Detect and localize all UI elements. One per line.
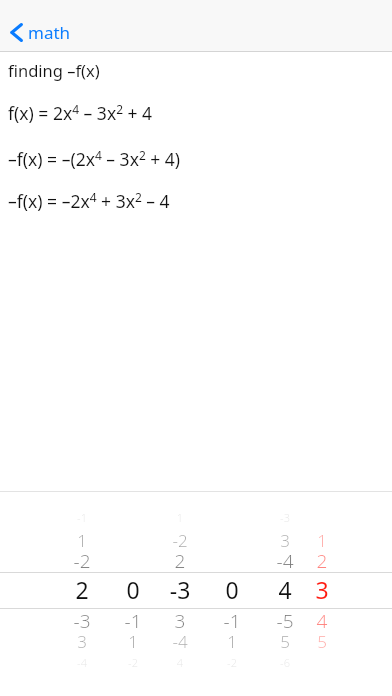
staticText: finding –f(x) [8,59,392,81]
button[interactable]: -5 [255,608,315,634]
staticText: -1 [103,608,163,634]
button[interactable]: -4 [150,630,210,653]
button[interactable]: 2 [52,574,112,605]
staticText: 3 [150,608,210,634]
button[interactable]: 1 [202,630,262,653]
button[interactable]: 3 [52,630,112,653]
staticText: -3 [150,574,210,605]
staticText: 3 [52,630,112,653]
staticText: 1 [103,630,163,653]
staticText: 2 [150,548,210,574]
button[interactable]: 1 [103,630,163,653]
button[interactable]: -3 [52,608,112,634]
staticText: 0 [103,574,163,605]
staticText: 5 [292,630,352,653]
button[interactable]: 3 [292,574,352,605]
other: Back to math [10,23,23,42]
staticText: 1 [52,529,112,552]
button[interactable]: -2 [52,548,112,574]
button[interactable]: 3 [150,608,210,634]
button[interactable]: 4 [255,574,315,605]
staticText: 3 [292,574,352,605]
staticText: f(x) = 2x4 – 3x2 + 4 [8,101,392,125]
staticText: -1 [202,608,262,634]
staticText: –f(x) = –2x4 + 3x2 – 4 [8,189,392,213]
staticText: -2 [150,529,210,552]
button[interactable]: -3 [150,574,210,605]
button[interactable]: 1 [52,529,112,552]
staticText: 0 [202,574,262,605]
button[interactable]: 5 [292,630,352,653]
staticText: 4 [292,608,352,634]
button[interactable]: 3 [255,529,315,552]
staticText: -4 [150,630,210,653]
staticText: 1 [202,630,262,653]
button[interactable]: 2 [150,548,210,574]
button[interactable]: 0 [103,574,163,605]
staticText: –f(x) = –(2x4 – 3x2 + 4) [8,147,392,171]
button[interactable]: -1 [103,608,163,634]
button[interactable]: 2 [292,548,352,574]
button[interactable]: 4 [292,608,352,634]
button[interactable]: -2 [150,529,210,552]
button[interactable]: 1 [292,529,352,552]
staticText: -5 [255,608,315,634]
staticText: 5 [255,630,315,653]
button[interactable]: Back to math [0,16,83,49]
staticText: 2 [52,574,112,605]
staticText: 3 [255,529,315,552]
staticText: -4 [255,548,315,574]
button[interactable]: 5 [255,630,315,653]
staticText: 1 [292,529,352,552]
staticText: math [28,21,71,44]
staticText: 2 [292,548,352,574]
button[interactable]: -1 [202,608,262,634]
staticText: 4 [255,574,315,605]
button[interactable]: 0 [202,574,262,605]
staticText: -3 [52,608,112,634]
staticText: -2 [52,548,112,574]
button[interactable]: -4 [255,548,315,574]
